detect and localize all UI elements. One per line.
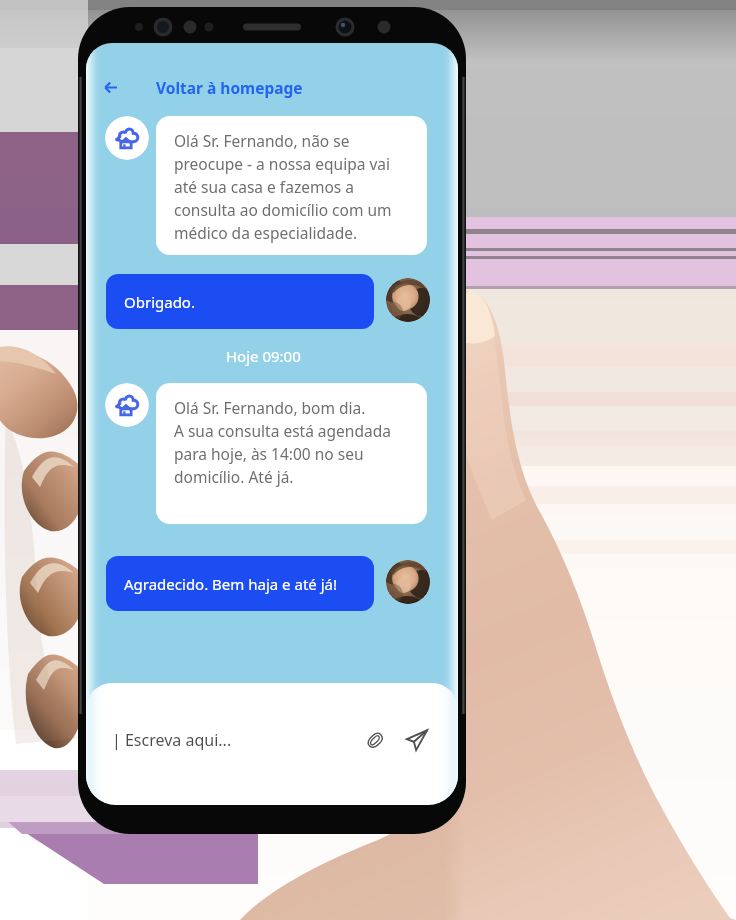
button[interactable]: Assistente — [105, 116, 149, 160]
staticText: Olá Sr. Fernando, bom dia. A sua consult… — [174, 397, 391, 488]
button[interactable]: Perfil — [386, 560, 430, 604]
staticText: | Escreva aqui... — [112, 729, 232, 751]
staticText: Obrigado. — [124, 292, 195, 312]
button[interactable]: Agradecido. Bem haja e até já! — [106, 556, 374, 611]
button[interactable]: Obrigado. — [106, 274, 374, 329]
button[interactable]: Olá Sr. Fernando, bom dia. A sua consult… — [156, 383, 427, 524]
button[interactable]: Voltar à homepage — [92, 67, 303, 107]
button[interactable]: | Escreva aqui... — [112, 723, 360, 757]
staticText: Olá Sr. Fernando, não se preocupe - a no… — [174, 130, 392, 244]
button[interactable]: Perfil — [386, 278, 430, 322]
button[interactable]: Assistente — [105, 383, 149, 427]
staticText: Voltar à homepage — [156, 77, 303, 98]
button[interactable]: Attach file — [360, 725, 390, 755]
staticText: Agradecido. Bem haja e até já! — [124, 574, 337, 594]
staticText: Hoje 09:00 — [226, 346, 301, 366]
button[interactable]: Olá Sr. Fernando, não se preocupe - a no… — [156, 116, 427, 255]
button[interactable]: Send — [402, 725, 432, 755]
